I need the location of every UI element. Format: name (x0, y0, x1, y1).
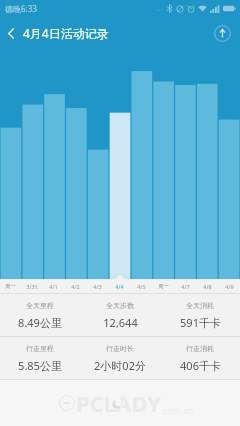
staticText: 4/5 (137, 283, 146, 290)
staticText: 591千卡 (180, 315, 221, 330)
button[interactable]: 行走时长 (80, 337, 160, 379)
staticText: 周一 (158, 283, 169, 290)
button[interactable]: 行走里程 (0, 337, 80, 379)
staticText: 4/2 (71, 283, 80, 290)
staticText: 行走时长 (106, 344, 134, 353)
staticText: 4/3 (93, 283, 102, 290)
button[interactable]: 3/31 (21, 279, 42, 293)
button[interactable]: 全天步数 (80, 294, 160, 336)
button[interactable]: 周一 (0, 279, 21, 293)
staticText: 3/31 (26, 283, 38, 290)
staticText: 4/4 (115, 283, 124, 290)
button[interactable]: Share (212, 23, 232, 43)
button[interactable]: Collapse (58, 394, 76, 412)
staticText: 行走消耗 (186, 344, 214, 353)
button[interactable]: 行走消耗 (160, 337, 240, 379)
staticText: 全天消耗 (186, 301, 214, 310)
staticText: 4月4日活动记录 (23, 25, 109, 41)
staticText: 德晚6:33 (5, 3, 37, 14)
staticText: 全天里程 (26, 301, 54, 310)
button[interactable]: 4/2 (64, 279, 86, 293)
staticText: 406千卡 (180, 358, 221, 373)
button[interactable]: 4/4 (108, 279, 130, 293)
button[interactable]: 4/7 (174, 279, 196, 293)
staticText: 全天步数 (106, 301, 134, 310)
button[interactable]: 全天消耗 (160, 294, 240, 336)
staticText: 4/7 (181, 283, 190, 290)
staticText: 周一 (5, 283, 16, 290)
staticText: 2小时02分 (94, 358, 146, 373)
staticText: 5.85公里 (18, 358, 62, 373)
button[interactable]: Back (0, 21, 117, 45)
staticText: 8.49公里 (18, 315, 62, 330)
button[interactable]: 4/3 (86, 279, 108, 293)
button[interactable]: 4/8 (196, 279, 218, 293)
staticText: 4/1 (49, 283, 58, 290)
staticText: 12,644 (103, 315, 138, 330)
button[interactable]: 全天里程 (0, 294, 80, 336)
button[interactable]: 4/9 (218, 279, 240, 293)
staticText: 4/8 (203, 283, 212, 290)
staticText: 4/9 (225, 283, 234, 290)
button[interactable]: 4/5 (130, 279, 152, 293)
button[interactable]: 4/1 (42, 279, 64, 293)
staticText: 行走里程 (26, 344, 54, 353)
staticText: PCLADY (76, 388, 161, 418)
button[interactable]: 周一 (152, 279, 174, 293)
other: Back (7, 27, 15, 40)
